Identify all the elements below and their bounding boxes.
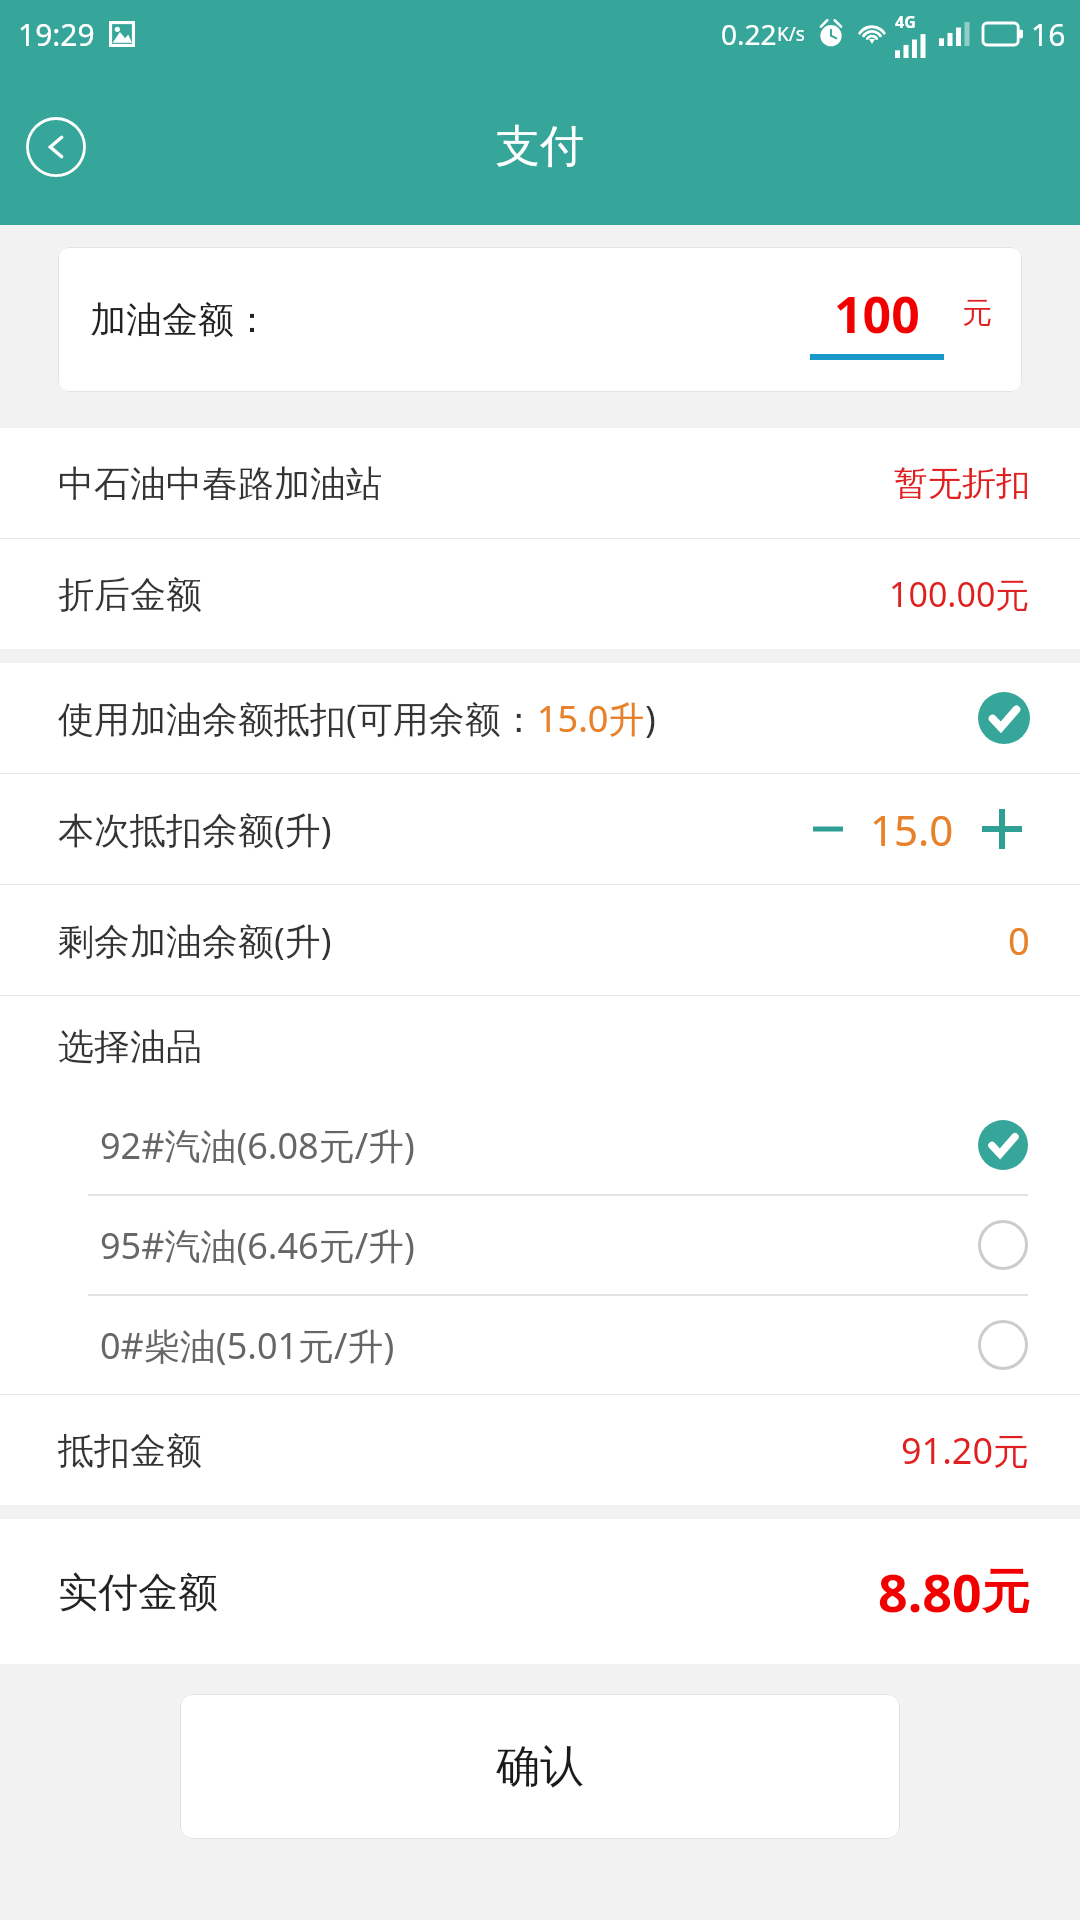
staticText: 0.22 [721,15,777,53]
staticText: 15.0升 [537,694,645,743]
staticText: 19:29 [18,14,95,55]
staticText: 100.00元 [889,571,1030,617]
staticText: 加油金额： [90,297,270,342]
staticText: 0 [1008,914,1030,966]
staticText: 抵扣金额 [58,1428,202,1473]
staticText: 中石油中春路加油站 [58,461,382,506]
staticText: 暂无折扣 [894,462,1030,505]
staticText: 选择油品 [58,1024,202,1069]
button[interactable]: Decrease [800,801,856,857]
button[interactable]: Selected [978,1120,1028,1170]
staticText: 元 [962,294,992,332]
button[interactable]: 确认 [180,1694,900,1839]
staticText: 元 [982,1562,1030,1622]
staticText: 使用加油余额抵扣(可用余额： [58,694,537,743]
button[interactable]: 折后金额 [0,539,1080,649]
button[interactable]: 实付金额 [0,1519,1080,1664]
staticText: 95#汽油(6.46元/升) [100,1221,415,1270]
staticText: 折后金额 [58,572,202,617]
button[interactable]: 0#柴油(5.01元/升) [0,1296,1080,1394]
button[interactable]: 加油金额： [58,247,1022,392]
staticText: 支付 [496,119,584,174]
staticText: 100 [834,280,920,348]
button[interactable]: Not selected [978,1320,1028,1370]
button[interactable]: 使用加油余额抵扣(可用余额： [0,663,1080,773]
staticText: 4G [895,11,916,33]
staticText: 15.0 [870,801,954,858]
button[interactable]: 95#汽油(6.46元/升) [0,1196,1080,1294]
button[interactable]: Not selected [978,1220,1028,1270]
button[interactable]: 剩余加油余额(升) [0,885,1080,995]
staticText: K/s [777,21,805,47]
button[interactable]: Back [22,113,90,181]
button[interactable]: 中石油中春路加油站 [0,428,1080,538]
button[interactable]: Selected [978,692,1030,744]
button[interactable]: 抵扣金额 [0,1395,1080,1505]
button[interactable]: Increase [974,801,1030,857]
staticText: 92#汽油(6.08元/升) [100,1121,415,1170]
staticText: 确认 [496,1739,584,1794]
staticText: 0#柴油(5.01元/升) [100,1321,395,1370]
staticText: 本次抵扣余额(升) [58,805,332,854]
staticText: 8.80 [878,1556,982,1627]
staticText: 91.20元 [901,1426,1030,1475]
staticText: ) [645,694,656,743]
staticText: 剩余加油余额(升) [58,916,332,965]
button[interactable]: 本次抵扣余额(升) [0,774,1080,884]
staticText: 实付金额 [58,1567,218,1617]
button[interactable]: 92#汽油(6.08元/升) [0,1096,1080,1194]
staticText: 16 [1031,14,1066,55]
